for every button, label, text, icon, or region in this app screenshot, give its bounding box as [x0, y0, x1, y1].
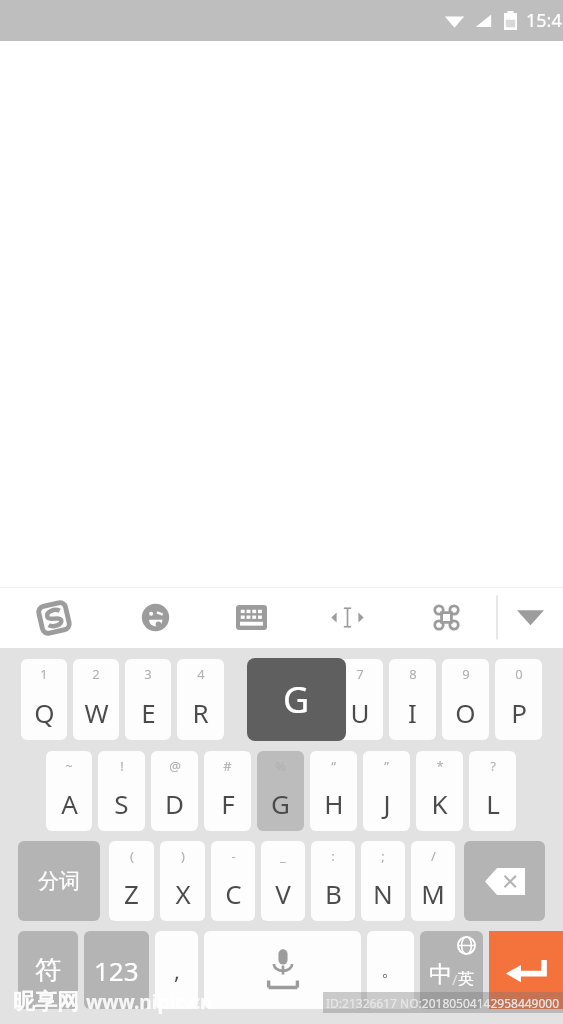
- button[interactable]: 8: [389, 659, 436, 740]
- button[interactable]: 9: [442, 659, 489, 740]
- staticText: !: [120, 757, 124, 775]
- staticText: _: [280, 847, 286, 865]
- button[interactable]: Move cursor: [299, 587, 396, 648]
- button[interactable]: (: [109, 841, 154, 921]
- staticText: #: [223, 757, 232, 775]
- staticText: ~: [65, 757, 73, 775]
- button[interactable]: 。: [367, 931, 414, 1009]
- staticText: N: [373, 876, 393, 911]
- button[interactable]: ?: [469, 751, 516, 831]
- staticText: www.nipic.cn: [86, 989, 213, 1015]
- button[interactable]: !: [98, 751, 145, 831]
- staticText: %: [275, 757, 286, 775]
- button[interactable]: Enter: [489, 931, 563, 1009]
- staticText: 9: [462, 665, 470, 683]
- staticText: G: [271, 786, 290, 821]
- staticText: ,: [174, 955, 180, 985]
- button[interactable]: Switch Chinese English: [420, 931, 483, 1009]
- staticText: ID:21326617 NO:20180504142958449000: [326, 995, 560, 1011]
- staticText: P: [511, 695, 527, 730]
- staticText: A: [61, 786, 78, 821]
- staticText: M: [421, 876, 445, 911]
- staticText: G: [283, 675, 310, 724]
- button[interactable]: 7: [336, 659, 383, 740]
- staticText: K: [431, 786, 448, 821]
- staticText: J: [383, 786, 391, 821]
- staticText: ?: [490, 757, 496, 775]
- staticText: 15:4: [526, 8, 562, 33]
- button[interactable]: ”: [363, 751, 410, 831]
- staticText: C: [225, 876, 242, 911]
- button[interactable]: Space and voice input: [204, 931, 361, 1009]
- staticText: *: [436, 757, 444, 775]
- staticText: 4: [197, 665, 205, 683]
- button[interactable]: 4: [177, 659, 224, 740]
- button[interactable]: _: [261, 841, 305, 921]
- staticText: ;: [381, 847, 385, 865]
- staticText: Q: [34, 695, 55, 730]
- button[interactable]: More settings: [396, 587, 497, 648]
- staticText: B: [325, 876, 342, 911]
- button[interactable]: [230, 659, 277, 740]
- button[interactable]: ;: [361, 841, 405, 921]
- staticText: 3: [144, 665, 152, 683]
- staticText: @: [169, 757, 181, 775]
- staticText: 。: [381, 958, 400, 982]
- staticText: 符: [35, 954, 61, 987]
- staticText: -: [231, 847, 236, 865]
- staticText: 8: [409, 665, 417, 683]
- button[interactable]: 符: [18, 931, 78, 1009]
- staticText: 昵享网: [13, 988, 79, 1016]
- staticText: 分词: [38, 868, 80, 894]
- staticText: X: [175, 876, 191, 911]
- button[interactable]: Hide keyboard: [497, 587, 563, 648]
- button[interactable]: “: [310, 751, 357, 831]
- staticText: R: [192, 695, 209, 730]
- staticText: ”: [384, 757, 389, 775]
- staticText: /: [452, 969, 458, 989]
- staticText: 7: [356, 665, 364, 683]
- staticText: ): [181, 847, 185, 865]
- button[interactable]: @: [151, 751, 198, 831]
- button[interactable]: Emoji: [107, 587, 204, 648]
- button[interactable]: 2: [73, 659, 119, 740]
- button[interactable]: #: [204, 751, 251, 831]
- staticText: 中: [429, 960, 452, 989]
- staticText: 英: [458, 969, 474, 989]
- staticText: S: [114, 786, 129, 821]
- staticText: /: [431, 847, 436, 865]
- button[interactable]: [283, 659, 330, 740]
- button[interactable]: 分词: [18, 841, 100, 921]
- staticText: V: [275, 876, 291, 911]
- button[interactable]: -: [211, 841, 255, 921]
- button[interactable]: Backspace: [464, 841, 545, 921]
- button[interactable]: %: [257, 751, 304, 831]
- button[interactable]: Sogou input method: [0, 587, 107, 648]
- staticText: 2: [92, 665, 100, 683]
- button[interactable]: *: [416, 751, 463, 831]
- staticText: H: [324, 786, 344, 821]
- staticText: :: [331, 847, 335, 865]
- staticText: Z: [124, 876, 139, 911]
- button[interactable]: 3: [125, 659, 171, 740]
- staticText: L: [486, 786, 500, 821]
- staticText: F: [221, 786, 235, 821]
- staticText: W: [84, 695, 109, 730]
- button[interactable]: /: [411, 841, 455, 921]
- staticText: “: [331, 757, 336, 775]
- staticText: U: [350, 695, 370, 730]
- button[interactable]: ~: [46, 751, 92, 831]
- staticText: E: [141, 695, 156, 730]
- staticText: I: [408, 695, 417, 730]
- button[interactable]: 123: [84, 931, 149, 1009]
- staticText: D: [165, 786, 184, 821]
- button[interactable]: Keyboard layout: [204, 587, 299, 648]
- button[interactable]: :: [311, 841, 355, 921]
- button[interactable]: ): [160, 841, 205, 921]
- button[interactable]: ,: [155, 931, 198, 1009]
- staticText: 1: [40, 665, 48, 683]
- button[interactable]: 0: [495, 659, 542, 740]
- button[interactable]: G key preview: [247, 658, 346, 741]
- staticText: 123: [94, 953, 139, 988]
- button[interactable]: 1: [21, 659, 67, 740]
